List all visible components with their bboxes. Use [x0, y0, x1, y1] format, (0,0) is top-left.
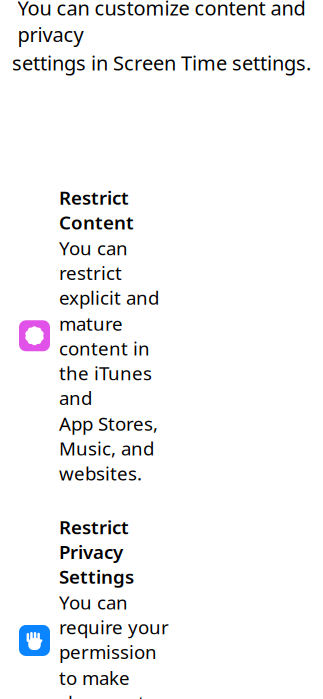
staticText: settings in Screen Time settings.: [12, 49, 311, 76]
staticText: Restrict Privacy Settings: [59, 514, 134, 589]
staticText: App Stores, Music, and websites.: [59, 411, 158, 486]
staticText: You can restrict explicit and: [59, 236, 159, 310]
staticText: You can require your permission: [59, 590, 169, 664]
staticText: to make changes to privacy: [59, 665, 156, 699]
staticText: mature content in the iTunes and: [59, 311, 152, 410]
staticText: You can customize content and privacy: [17, 0, 305, 47]
staticText: Restrict Content: [59, 185, 134, 235]
